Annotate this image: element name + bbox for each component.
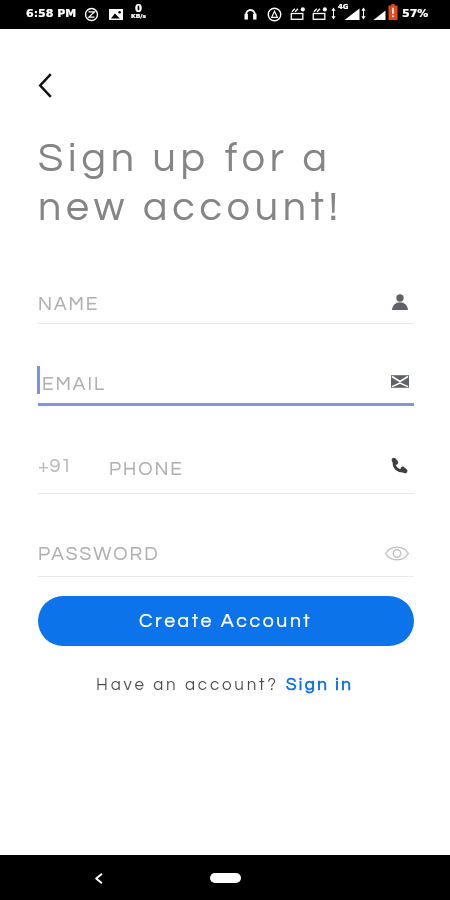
staticText: 6:58 PM [26,7,77,20]
button[interactable]: Email [391,374,409,389]
staticText: PASSWORD [38,544,160,564]
staticText: PHONE [109,459,184,479]
button[interactable]: Back [82,862,114,894]
staticText: +91 [38,456,73,477]
button[interactable]: Navigate back [25,65,65,105]
button[interactable]: Show password [385,544,409,563]
staticText: KB/s [131,12,146,19]
staticText: Have an account? [96,676,286,694]
button[interactable] [38,445,414,495]
button[interactable]: Create Account [38,596,414,646]
button[interactable] [38,528,414,578]
staticText: NAME [38,294,100,314]
staticText: 4G [338,3,349,11]
button[interactable]: Home [210,873,241,883]
staticText: Sign in [286,676,354,694]
button[interactable] [38,357,414,405]
button[interactable]: Have an account? [96,676,354,694]
staticText: 0 [135,3,142,15]
button[interactable] [38,277,414,324]
staticText: Create Account [139,611,313,631]
staticText: Sign up for a new account! [38,137,343,229]
staticText: EMAIL [42,374,107,394]
staticText: 57% [402,7,429,20]
button[interactable]: Name [392,294,408,311]
button[interactable]: Phone [391,457,408,474]
